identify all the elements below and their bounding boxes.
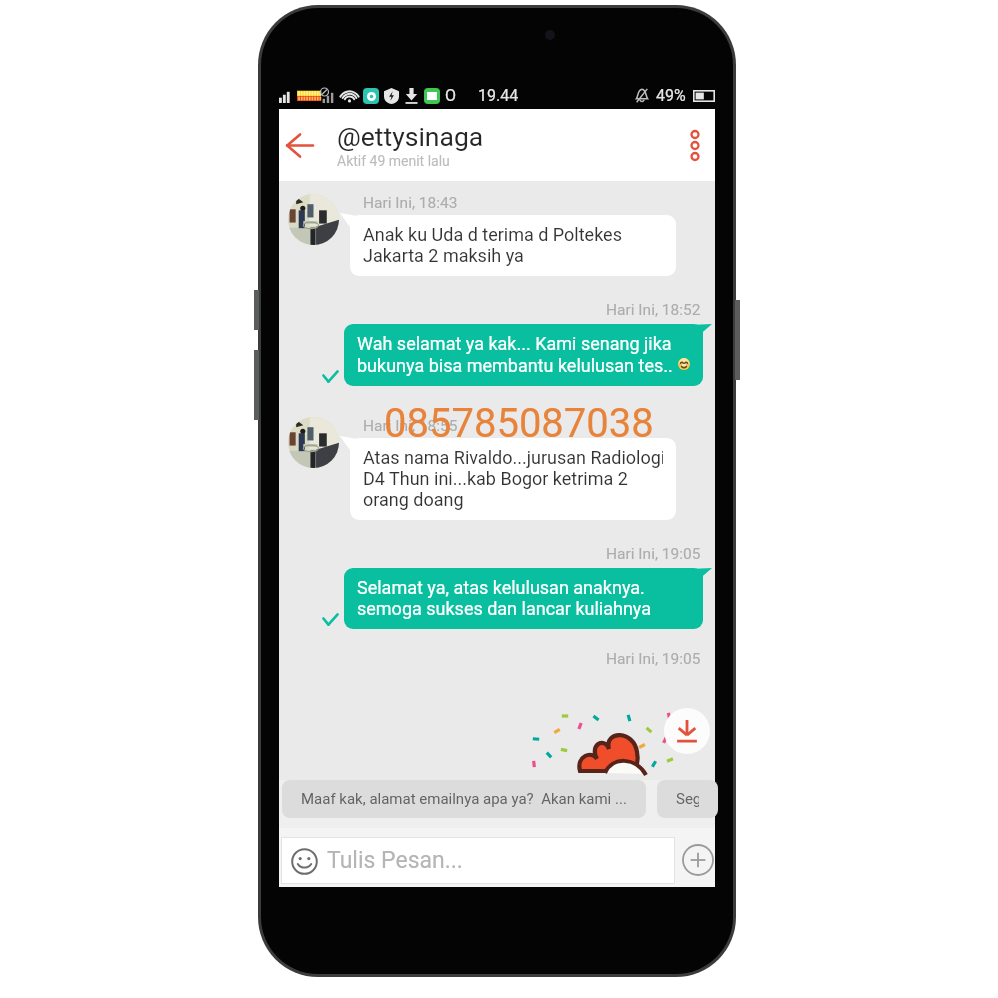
staticText: Maaf kak, alamat emailnya apa ya? Akan k… [301, 790, 627, 808]
button[interactable]: More options [663, 109, 715, 181]
staticText: Wah selamat ya kak... Kami senang jika [357, 333, 672, 354]
button[interactable]: Add attachment [680, 836, 716, 884]
staticText: bukunya bisa membantu kelulusan tes.. [357, 355, 673, 376]
staticText: Selamat ya, atas kelulusan anaknya. [357, 577, 645, 598]
staticText: Tulis Pesan... [327, 847, 463, 874]
staticText: orang doang [363, 489, 464, 510]
staticText: 49% [656, 86, 686, 105]
staticText: Atas nama Rivaldo...jurusan Radiologi [363, 447, 663, 468]
staticText: Hari Ini, 18:43 [363, 194, 458, 212]
staticText: Anak ku Uda d terima d Poltekes [363, 224, 622, 245]
staticText: Jakarta 2 maksih ya [363, 245, 524, 266]
staticText: @ettysinaga [337, 121, 484, 152]
staticText: semoga sukses dan lancar kuliahnya [357, 598, 652, 619]
staticText: O [445, 86, 457, 105]
button[interactable]: Anak ku Uda d terima d Poltekes [350, 215, 676, 276]
staticText: Hari Ini, 19:05 [606, 545, 701, 563]
staticText: 085785087038 [384, 400, 654, 447]
button[interactable]: Back [279, 110, 337, 181]
staticText: Hari Ini, 18:55 [363, 417, 458, 435]
button[interactable]: Segera yaa kak [657, 780, 718, 818]
button[interactable]: Atas nama Rivaldo...jurusan Radiologi [350, 438, 676, 520]
button[interactable]: Wah selamat ya kak... Kami senang jika [344, 324, 703, 386]
staticText: Segera yaa kak [676, 790, 699, 808]
button[interactable]: Tulis Pesan... [281, 837, 675, 884]
button[interactable]: Maaf kak, alamat emailnya apa ya? Akan k… [282, 780, 646, 818]
staticText: Aktif 49 menit lalu [337, 153, 450, 169]
button[interactable]: Download sticker [664, 708, 710, 754]
staticText: Hari Ini, 18:52 [606, 301, 701, 319]
staticText: Hari Ini, 19:05 [606, 650, 701, 668]
button[interactable]: @ettysinaga [337, 121, 663, 169]
button[interactable]: Selamat ya, atas kelulusan anaknya. [344, 568, 703, 629]
staticText: D4 Thun ini...kab Bogor ketrima 2 [363, 468, 628, 489]
staticText: 19.44 [478, 86, 519, 105]
